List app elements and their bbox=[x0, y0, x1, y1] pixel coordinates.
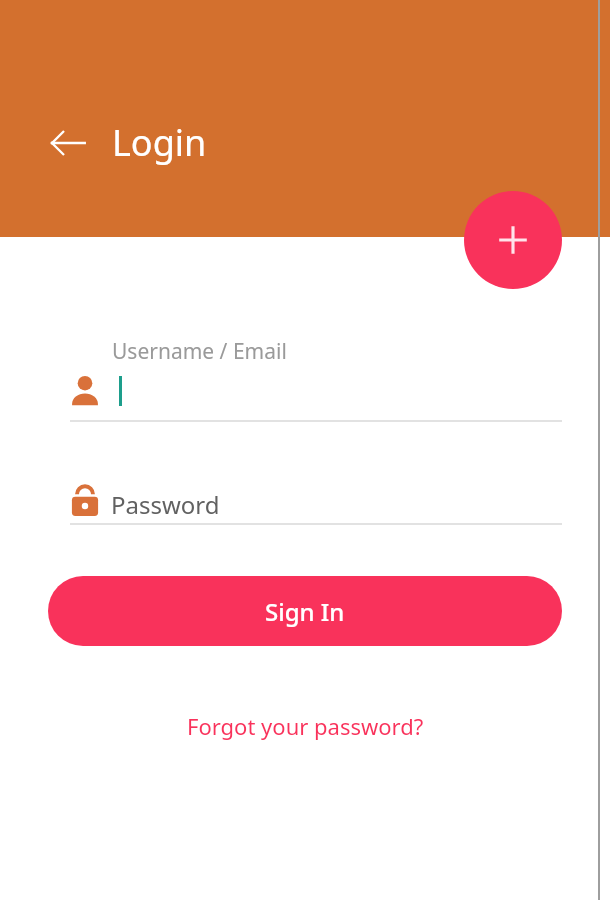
button[interactable]: Add bbox=[464, 191, 562, 289]
button[interactable]: Sign In bbox=[48, 576, 562, 646]
staticText: Password bbox=[111, 488, 220, 521]
staticText: Sign In bbox=[265, 595, 345, 628]
staticText: Forgot your password? bbox=[187, 711, 424, 741]
staticText: Username / Email bbox=[112, 337, 287, 366]
button[interactable]: Back bbox=[44, 119, 92, 167]
button[interactable]: Forgot your password? bbox=[175, 705, 436, 747]
staticText: Login bbox=[112, 118, 207, 167]
